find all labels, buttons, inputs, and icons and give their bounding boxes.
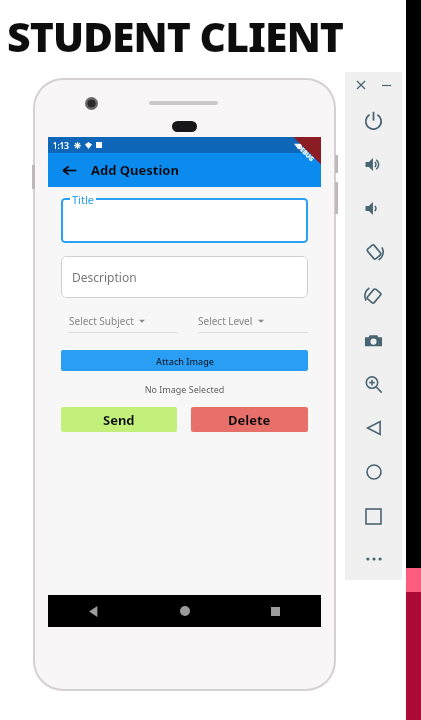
- button[interactable]: Screenshot: [345, 318, 402, 362]
- button[interactable]: [61, 198, 308, 243]
- staticText: Delete: [228, 411, 271, 429]
- staticText: Select Subject: [69, 314, 134, 328]
- button[interactable]: Minimize: [377, 76, 395, 94]
- staticText: DEBUG: [295, 143, 316, 163]
- button[interactable]: Volume up: [345, 142, 402, 186]
- staticText: No Image Selected: [61, 383, 308, 395]
- button[interactable]: Power: [345, 98, 402, 142]
- staticText: Title: [72, 192, 94, 207]
- staticText: Add Question: [91, 161, 179, 179]
- button[interactable]: Back: [48, 595, 139, 627]
- button[interactable]: Attach Image: [61, 350, 308, 371]
- staticText: Send: [103, 411, 135, 429]
- button[interactable]: More: [345, 538, 402, 580]
- staticText: STUDENT CLIENT: [7, 8, 344, 64]
- button[interactable]: Description: [61, 256, 308, 298]
- staticText: Description: [72, 269, 137, 285]
- button[interactable]: Home: [139, 595, 230, 627]
- button[interactable]: Home: [345, 450, 402, 494]
- button[interactable]: Overview: [345, 494, 402, 538]
- button[interactable]: Zoom: [345, 362, 402, 406]
- button[interactable]: Rotate left: [345, 230, 402, 274]
- button[interactable]: Select Subject: [61, 314, 178, 333]
- staticText: Select Level: [198, 314, 253, 328]
- button[interactable]: Recents: [230, 595, 321, 627]
- button[interactable]: Select Level: [190, 314, 308, 333]
- staticText: 1:13: [53, 140, 69, 151]
- button[interactable]: Back: [345, 406, 402, 450]
- button[interactable]: Delete: [191, 407, 308, 432]
- staticText: Attach Image: [156, 355, 214, 367]
- button[interactable]: Back: [56, 157, 82, 183]
- button[interactable]: Rotate right: [345, 274, 402, 318]
- button[interactable]: Close: [352, 76, 370, 94]
- button[interactable]: Volume down: [345, 186, 402, 230]
- button[interactable]: Send: [61, 407, 177, 432]
